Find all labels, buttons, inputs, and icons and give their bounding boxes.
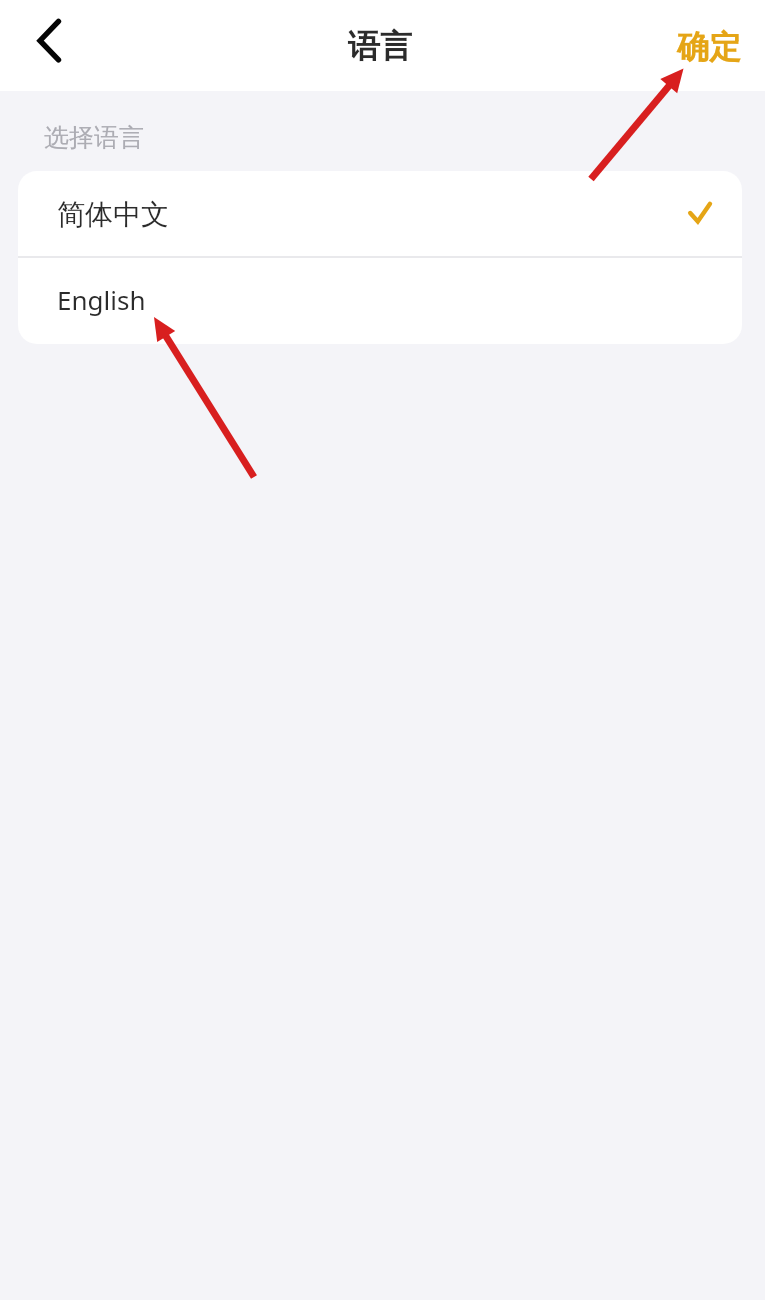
staticText: 选择语言 bbox=[44, 122, 144, 153]
staticText: 简体中文 bbox=[57, 197, 169, 232]
staticText: 语言 bbox=[348, 26, 412, 66]
button[interactable]: English bbox=[18, 258, 742, 344]
button[interactable]: Back bbox=[20, 16, 76, 64]
button[interactable]: 确定 bbox=[651, 13, 765, 79]
button[interactable]: 简体中文 bbox=[18, 171, 742, 256]
other: Selected bbox=[688, 171, 712, 256]
staticText: English bbox=[57, 282, 146, 317]
staticText: 确定 bbox=[677, 27, 741, 67]
